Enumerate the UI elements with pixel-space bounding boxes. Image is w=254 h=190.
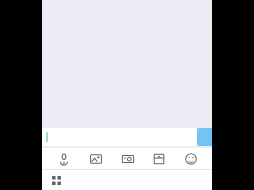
button[interactable]: Emoji xyxy=(180,148,201,169)
button[interactable]: Voice message xyxy=(53,148,74,169)
button[interactable]: Send xyxy=(197,128,212,146)
button[interactable] xyxy=(42,128,197,146)
button[interactable]: Apps xyxy=(47,171,65,189)
button[interactable]: Stickers xyxy=(148,148,169,169)
button[interactable]: Gallery xyxy=(85,148,106,169)
button[interactable]: Camera xyxy=(117,148,138,169)
